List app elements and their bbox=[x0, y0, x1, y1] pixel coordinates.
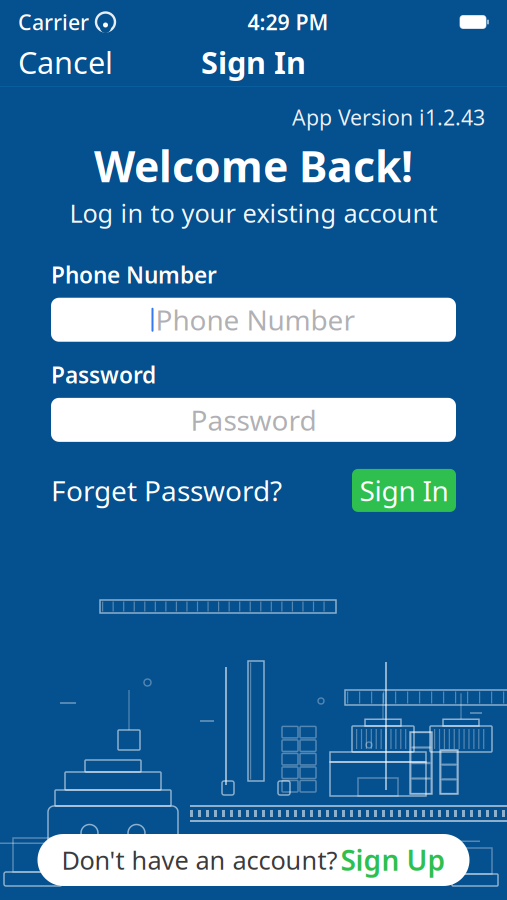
staticText: Don't have an account? bbox=[61, 843, 337, 877]
staticText: Sign Up bbox=[340, 841, 445, 879]
button[interactable]: Cancel bbox=[0, 34, 131, 90]
staticText: Cancel bbox=[18, 42, 113, 82]
button[interactable]: Sign In bbox=[352, 469, 456, 512]
button[interactable]: Phone Number bbox=[51, 298, 456, 342]
staticText: Password bbox=[190, 401, 316, 438]
staticText: 4:29 PM bbox=[247, 8, 328, 36]
staticText: App Version i1.2.43 bbox=[292, 103, 485, 131]
button[interactable]: Password bbox=[51, 398, 456, 442]
staticText: Password bbox=[51, 360, 156, 390]
staticText: Phone Number bbox=[51, 260, 217, 290]
staticText: Carrier bbox=[18, 8, 89, 36]
button[interactable]: Don't have an account? bbox=[37, 834, 469, 886]
button[interactable]: Forget Password? bbox=[51, 462, 282, 519]
staticText: Sign In bbox=[359, 472, 448, 509]
staticText: Welcome Back! bbox=[94, 137, 413, 194]
staticText: Phone Number bbox=[155, 301, 355, 338]
staticText: Sign In bbox=[201, 42, 306, 82]
staticText: Log in to your existing account bbox=[69, 196, 437, 230]
staticText: Forget Password? bbox=[51, 472, 282, 509]
